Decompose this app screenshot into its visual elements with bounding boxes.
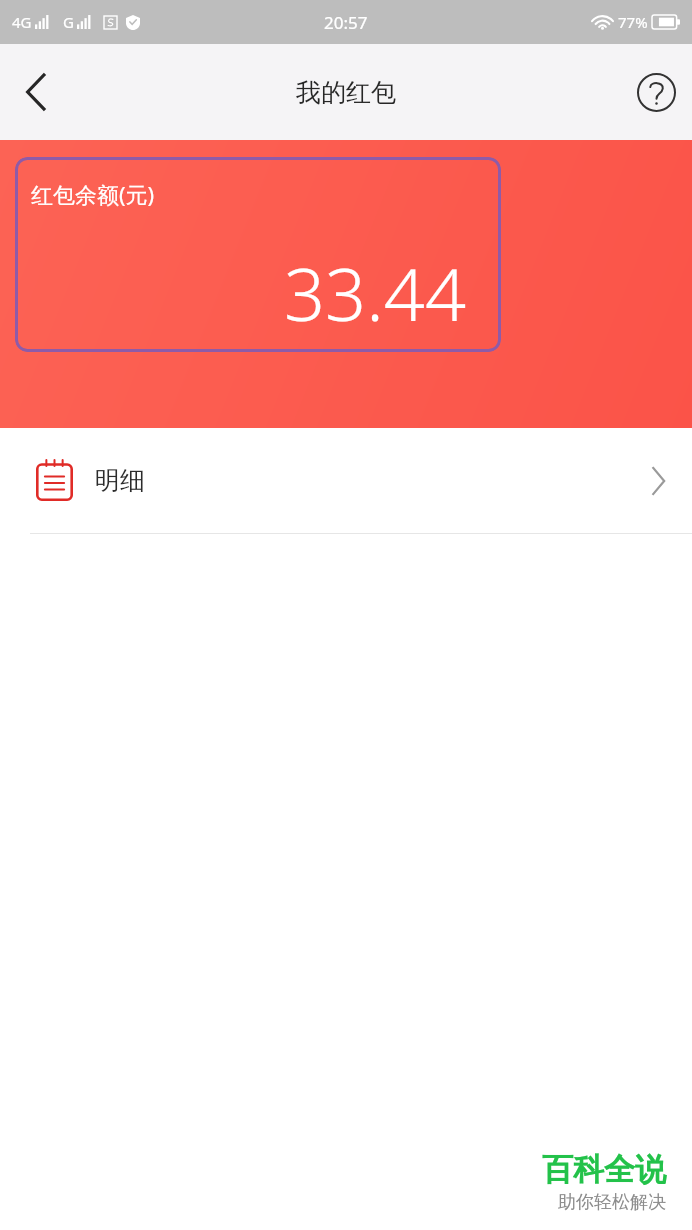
button[interactable]: 明细 (0, 428, 692, 533)
staticText: 77% (618, 12, 648, 32)
button[interactable]: Back (8, 64, 64, 120)
button[interactable]: Help (628, 64, 684, 120)
staticText: 助你轻松解决 (558, 1191, 666, 1214)
staticText: 红包余额(元) (31, 179, 155, 209)
staticText: 明细 (95, 465, 145, 496)
staticText: 4G (12, 12, 32, 32)
staticText: 我的红包 (296, 77, 396, 108)
staticText: G (63, 12, 74, 32)
staticText: 33.44 (284, 244, 467, 342)
button[interactable]: 红包余额(元) (15, 157, 501, 352)
staticText: 20:57 (324, 11, 368, 34)
staticText: 百科全说 (542, 1150, 666, 1189)
